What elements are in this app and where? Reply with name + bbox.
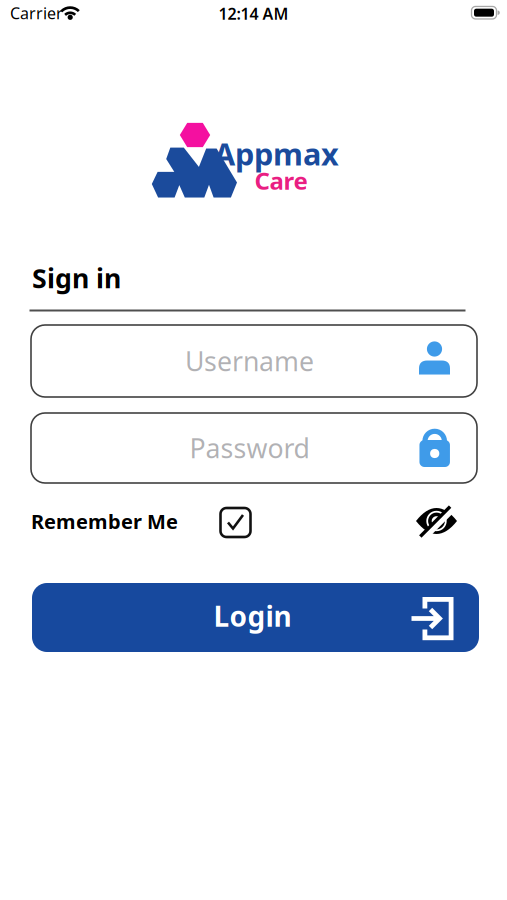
button[interactable]: Password xyxy=(31,413,477,483)
staticText: Sign in xyxy=(32,260,121,296)
staticText: Appmax xyxy=(214,133,339,174)
staticText: Username xyxy=(185,343,314,379)
button[interactable]: Username xyxy=(31,325,477,397)
button[interactable]: Login xyxy=(32,583,479,652)
staticText: Remember Me xyxy=(31,508,178,535)
staticText: Care xyxy=(254,164,307,196)
button[interactable]: Show password xyxy=(410,501,462,541)
staticText: Password xyxy=(189,430,309,466)
button[interactable]: Remember Me xyxy=(220,508,250,537)
staticText: Login xyxy=(213,597,291,635)
staticText: 12:14 AM xyxy=(218,3,288,24)
staticText: Carrier xyxy=(10,2,63,24)
